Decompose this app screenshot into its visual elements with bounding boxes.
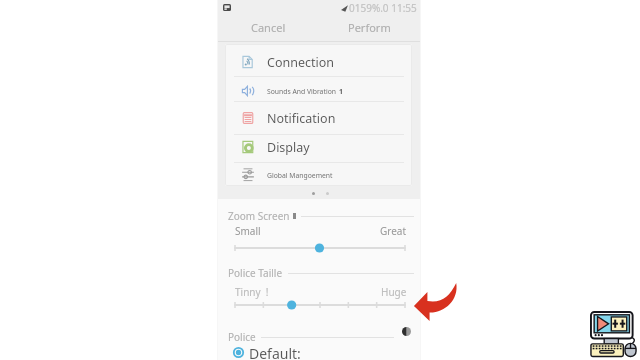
staticText: Connection	[267, 54, 334, 71]
staticText: Small	[235, 224, 261, 238]
staticText: Perform	[348, 20, 391, 35]
staticText: 0159%.0 11:55	[349, 1, 417, 15]
button[interactable]: Default:	[233, 344, 353, 360]
button[interactable]	[235, 241, 405, 255]
staticText: Display	[267, 139, 310, 156]
button[interactable]: Cancel	[235, 14, 301, 41]
button[interactable]: Global Mangoement	[225, 164, 412, 186]
staticText: Police Taille	[228, 266, 283, 280]
staticText: 1	[339, 87, 343, 96]
staticText: Cancel	[251, 20, 286, 35]
button[interactable]: Sounds And Vibration	[225, 80, 412, 102]
staticText: Great	[380, 224, 407, 238]
button[interactable]: Connection	[225, 51, 412, 73]
button[interactable]: Display	[225, 136, 412, 158]
staticText: Huge	[381, 285, 407, 299]
button[interactable]	[235, 298, 405, 312]
staticText: Sounds And Vibration	[267, 87, 336, 96]
staticText: Tinny !	[235, 285, 269, 299]
staticText: Police	[228, 330, 256, 344]
staticText: Global Mangoement	[267, 171, 333, 180]
staticText: Default:	[249, 344, 301, 360]
staticText: Zoom Screen	[228, 209, 290, 223]
button[interactable]: Perform	[336, 14, 402, 41]
button[interactable]: Font options	[402, 327, 411, 336]
button[interactable]: Notification	[225, 107, 412, 129]
staticText: Notification	[267, 110, 336, 127]
